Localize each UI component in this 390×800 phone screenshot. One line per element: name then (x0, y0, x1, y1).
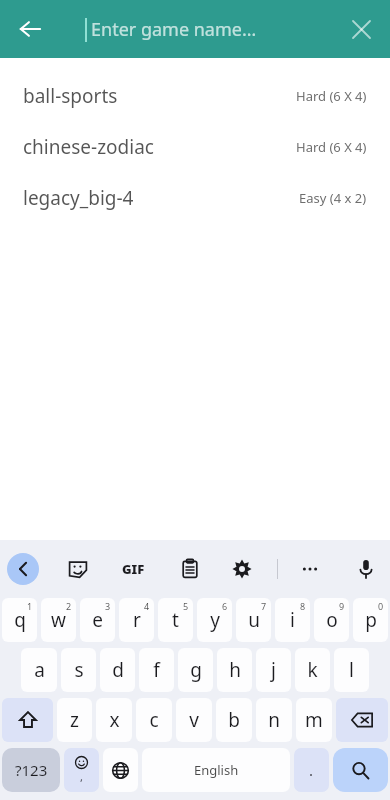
staticText: d (112, 657, 124, 683)
button[interactable]: Settings (225, 552, 259, 586)
button[interactable]: i (275, 598, 310, 642)
button[interactable]: g (178, 648, 213, 692)
button[interactable]: j (256, 648, 291, 692)
staticText: s (74, 657, 84, 683)
button[interactable]: l (334, 648, 369, 692)
staticText: y (210, 607, 220, 633)
staticText: 9 (339, 600, 345, 612)
staticText: k (307, 657, 318, 683)
staticText: 6 (222, 600, 228, 612)
staticText: chinese-zodiac (23, 134, 154, 160)
staticText: g (190, 657, 202, 683)
button[interactable]: Clipboard (173, 552, 207, 586)
staticText: w (51, 607, 66, 633)
button[interactable]: d (100, 648, 135, 692)
button[interactable]: Back (9, 8, 51, 50)
staticText: m (305, 707, 323, 733)
button[interactable]: legacy_big-4 (0, 172, 390, 223)
staticText: 5 (183, 600, 189, 612)
staticText: h (229, 657, 241, 683)
staticText: 7 (261, 600, 267, 612)
button[interactable]: Shift (2, 698, 53, 742)
staticText: e (92, 607, 103, 633)
staticText: 1 (27, 600, 33, 612)
button[interactable]: Backspace (336, 698, 388, 742)
staticText: , (80, 769, 83, 784)
staticText: v (189, 707, 199, 733)
staticText: Easy (4 x 2) (299, 189, 367, 207)
button[interactable]: b (216, 698, 252, 742)
button[interactable]: Change language (103, 748, 138, 792)
staticText: 2 (66, 600, 72, 612)
button[interactable]: k (295, 648, 330, 692)
staticText: GIF (122, 560, 145, 578)
staticText: u (248, 607, 260, 633)
staticText: . (309, 760, 314, 780)
staticText: 3 (105, 600, 111, 612)
button[interactable]: e (80, 598, 115, 642)
staticText: a (34, 657, 45, 683)
staticText: z (70, 707, 79, 733)
staticText: 8 (300, 600, 306, 612)
button[interactable]: m (296, 698, 332, 742)
button[interactable]: f (139, 648, 174, 692)
staticText: ?123 (15, 760, 48, 780)
button[interactable]: n (256, 698, 292, 742)
button[interactable]: More options (293, 552, 327, 586)
staticText: b (228, 707, 240, 733)
button[interactable]: x (96, 698, 132, 742)
button[interactable]: . (294, 748, 329, 792)
staticText: Enter game name… (91, 17, 257, 42)
button[interactable]: ball-sports (0, 70, 390, 121)
button[interactable]: Search (333, 748, 388, 792)
button[interactable]: Emoji (64, 748, 99, 792)
button[interactable]: q (2, 598, 37, 642)
button[interactable]: c (136, 698, 172, 742)
staticText: i (290, 607, 295, 633)
button[interactable]: Stickers (61, 552, 95, 586)
staticText: j (271, 657, 276, 683)
button[interactable]: Voice input (349, 552, 383, 586)
staticText: p (365, 607, 377, 633)
button[interactable]: Clear (340, 8, 382, 50)
staticText: l (349, 657, 354, 683)
staticText: English (194, 761, 239, 779)
button[interactable]: w (41, 598, 76, 642)
staticText: n (268, 707, 280, 733)
staticText: o (326, 607, 338, 633)
button[interactable]: chinese-zodiac (0, 121, 390, 172)
button[interactable]: z (57, 698, 92, 742)
button[interactable]: ?123 (2, 748, 60, 792)
staticText: ball-sports (23, 83, 118, 109)
staticText: r (133, 607, 141, 633)
button[interactable]: y (197, 598, 232, 642)
button[interactable]: p (353, 598, 388, 642)
button[interactable]: GIF (113, 552, 153, 586)
staticText: 0 (378, 600, 384, 612)
button[interactable]: o (314, 598, 349, 642)
button[interactable]: a (21, 648, 57, 692)
staticText: t (172, 607, 179, 633)
staticText: c (149, 707, 159, 733)
button[interactable]: v (176, 698, 212, 742)
staticText: 4 (144, 600, 150, 612)
button[interactable]: h (217, 648, 252, 692)
staticText: Hard (6 X 4) (296, 87, 367, 105)
button[interactable]: English (142, 748, 290, 792)
staticText: Hard (6 X 4) (296, 138, 367, 156)
button[interactable]: u (236, 598, 271, 642)
button[interactable]: t (158, 598, 193, 642)
button[interactable]: Collapse toolbar (7, 553, 39, 585)
button[interactable]: r (119, 598, 154, 642)
staticText: x (109, 707, 120, 733)
staticText: legacy_big-4 (23, 185, 134, 211)
staticText: f (153, 657, 160, 683)
button[interactable]: s (61, 648, 96, 692)
staticText: q (14, 607, 26, 633)
